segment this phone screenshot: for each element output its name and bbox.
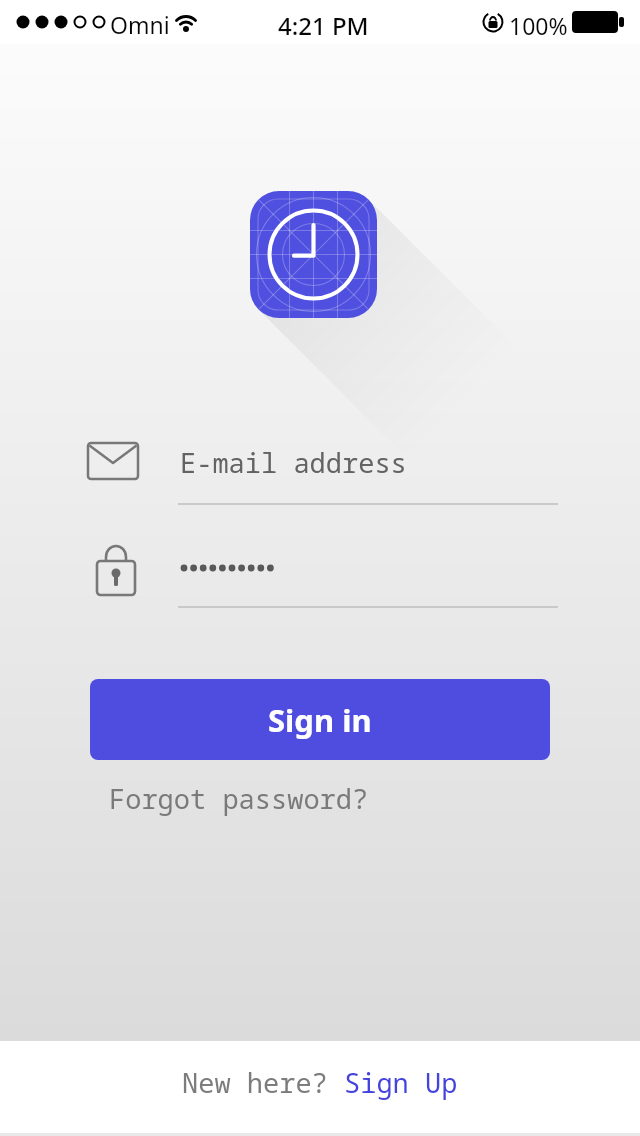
staticText: Omni [110, 9, 170, 40]
staticText: 100% [509, 10, 568, 41]
button[interactable]: E-mail address [85, 437, 558, 507]
staticText: 4:21 PM [278, 9, 369, 42]
button[interactable] [85, 540, 558, 610]
button[interactable]: Forgot password? [109, 780, 369, 817]
button[interactable]: Sign in [90, 679, 550, 760]
staticText: New here? [182, 1064, 344, 1101]
staticText: Sign Up [344, 1064, 458, 1101]
button[interactable]: Sign Up [344, 1064, 458, 1101]
staticText: Forgot password? [109, 780, 369, 817]
staticText: E-mail address [180, 444, 407, 481]
staticText: Sign in [268, 699, 372, 741]
